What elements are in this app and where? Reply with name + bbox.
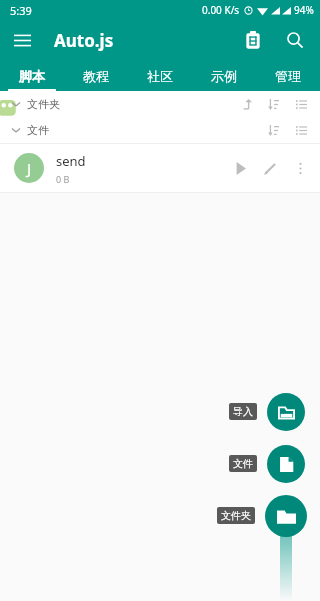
button[interactable]: 文件夹 <box>0 91 320 117</box>
button[interactable]: 文件 <box>267 445 305 483</box>
button[interactable]: Console <box>236 23 270 57</box>
button[interactable]: Sort <box>262 93 284 115</box>
staticText: 0 B <box>56 173 70 185</box>
button[interactable]: View mode <box>290 119 312 141</box>
button[interactable]: 导入 <box>229 403 257 420</box>
button[interactable]: Up <box>236 93 258 115</box>
button[interactable]: Search <box>278 23 312 57</box>
button[interactable]: 教程 <box>64 60 128 91</box>
staticText: 文件 <box>233 457 253 470</box>
button[interactable]: 脚本 <box>0 60 64 91</box>
staticText: 脚本 <box>19 68 45 84</box>
button[interactable]: Menu <box>6 24 38 56</box>
button[interactable]: 文件 <box>229 455 257 472</box>
button[interactable]: Run <box>226 154 254 182</box>
button[interactable]: View mode <box>290 93 312 115</box>
staticText: 示例 <box>211 68 237 84</box>
button[interactable]: 社区 <box>128 60 192 91</box>
staticText: 5:39 <box>10 3 32 18</box>
staticText: 94% <box>294 3 314 17</box>
button[interactable]: Sort <box>262 119 284 141</box>
staticText: J <box>27 158 32 178</box>
button[interactable]: 文件 <box>0 117 320 143</box>
button[interactable]: Edit <box>256 154 284 182</box>
button[interactable]: J <box>0 144 320 192</box>
staticText: 管理 <box>275 68 301 84</box>
staticText: 社区 <box>147 68 173 84</box>
staticText: 0.00 K/s <box>202 3 240 17</box>
staticText: 教程 <box>83 68 109 84</box>
button[interactable]: 示例 <box>192 60 256 91</box>
staticText: 文件夹 <box>27 97 60 111</box>
staticText: 文件夹 <box>221 509 251 522</box>
button[interactable]: 文件夹 <box>217 507 255 524</box>
button[interactable]: 导入 <box>267 393 305 431</box>
button[interactable]: 管理 <box>256 60 320 91</box>
staticText: send <box>56 152 86 170</box>
staticText: Auto.js <box>54 29 114 52</box>
button[interactable]: More options <box>286 154 314 182</box>
staticText: 导入 <box>233 405 253 418</box>
staticText: 文件 <box>27 123 49 137</box>
button[interactable]: 文件夹 <box>265 495 307 537</box>
